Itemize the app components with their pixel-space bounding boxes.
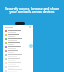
button[interactable] [3,69,33,72]
button[interactable] [3,33,33,37]
button[interactable]: Get started [15,22,25,25]
button[interactable] [3,37,33,41]
button[interactable] [3,29,33,33]
button[interactable] [3,49,33,53]
button[interactable] [3,61,33,65]
button[interactable] [3,45,33,49]
button[interactable] [3,41,33,45]
button[interactable]: More options [3,25,33,29]
staticText: Securely access, browse and share your c… [3,6,61,14]
button[interactable]: Add contact [29,44,33,48]
button[interactable] [3,57,33,61]
button[interactable] [3,53,33,57]
button[interactable] [3,65,33,69]
